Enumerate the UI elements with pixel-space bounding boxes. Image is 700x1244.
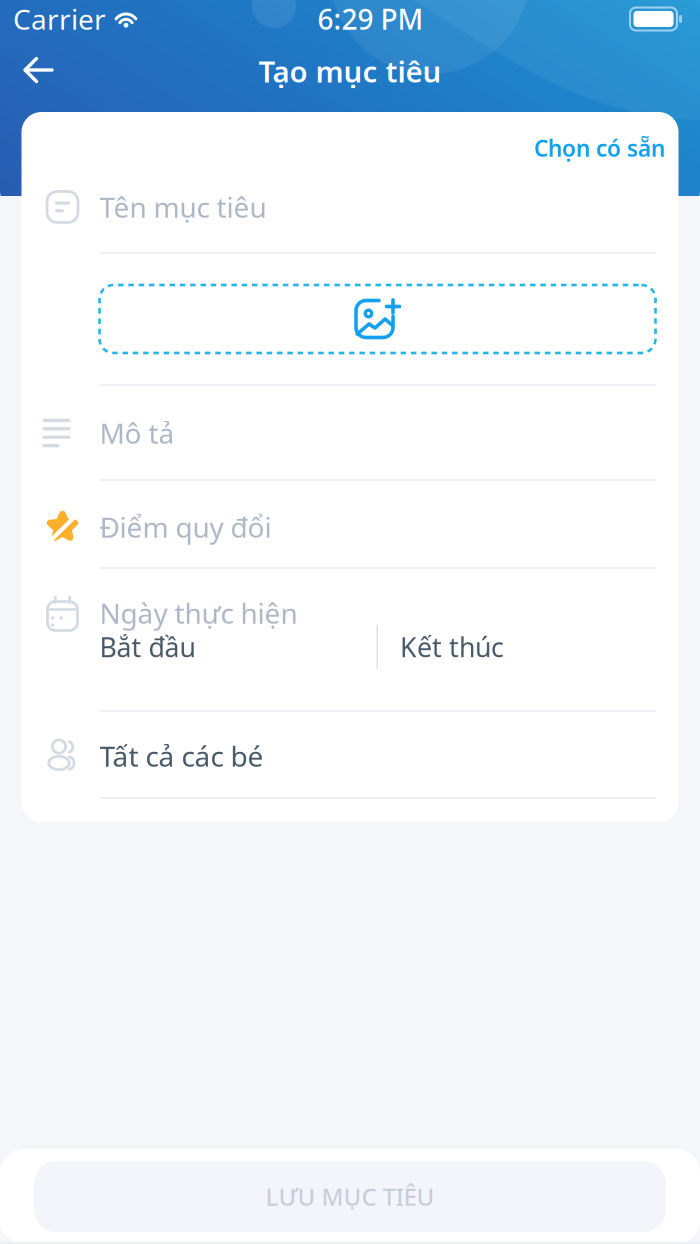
button[interactable]: LƯU MỤC TIÊU <box>34 1161 666 1232</box>
staticText: Tất cả các bé <box>99 737 263 775</box>
staticText: Điểm quy đổi <box>99 508 271 546</box>
staticText: Bắt đầu <box>99 629 195 665</box>
staticText: LƯU MỤC TIÊU <box>265 1181 434 1212</box>
button[interactable]: Bắt đầu <box>99 621 376 673</box>
staticText: Ngày thực hiện <box>99 594 297 632</box>
staticText: 6:29 PM <box>317 0 423 38</box>
staticText: Kết thúc <box>400 629 504 665</box>
staticText: Tạo mục tiêu <box>258 51 441 90</box>
button[interactable]: Kết thúc <box>378 621 504 673</box>
button[interactable]: Back <box>0 45 71 104</box>
button[interactable]: Chọn có sẵn <box>524 123 675 173</box>
staticText: Chọn có sẵn <box>534 133 665 163</box>
button[interactable]: Add photo <box>99 285 655 353</box>
staticText: Tên mục tiêu <box>99 188 266 226</box>
staticText: Mô tả <box>99 414 174 452</box>
staticText: Carrier <box>13 0 106 38</box>
